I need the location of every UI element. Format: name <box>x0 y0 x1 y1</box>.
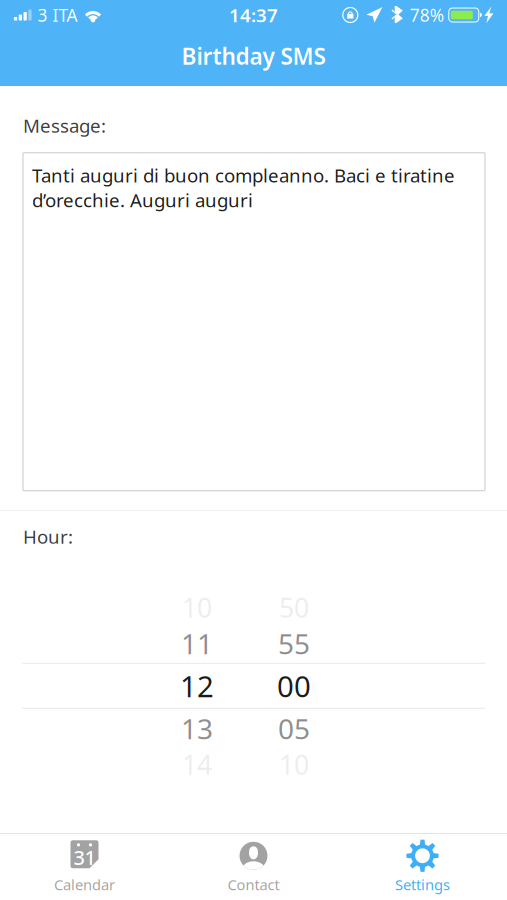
staticText: 00 <box>277 666 311 705</box>
button[interactable]: Tanti auguri di buon compleanno. Baci e … <box>23 153 485 491</box>
staticText: 14 <box>182 747 212 782</box>
staticText: 13 <box>181 710 213 747</box>
button[interactable]: Settings <box>338 834 507 900</box>
staticText: Birthday SMS <box>181 41 325 71</box>
staticText: 14:37 <box>229 3 278 27</box>
staticText: 10 <box>182 590 212 625</box>
staticText: 78% <box>410 3 444 26</box>
button[interactable]: Minutes <box>245 591 342 781</box>
staticText: Calendar <box>54 875 115 894</box>
staticText: 31 <box>73 844 95 871</box>
staticText: Message: <box>23 113 106 138</box>
staticText: 55 <box>278 625 310 662</box>
button[interactable]: 31 <box>0 834 169 900</box>
staticText: 12 <box>180 666 214 705</box>
staticText: 50 <box>279 590 309 625</box>
staticText: Hour: <box>23 524 73 549</box>
staticText: Contact <box>227 875 279 894</box>
staticText: Tanti auguri di buon compleanno. Baci e … <box>32 163 455 212</box>
button[interactable]: Contact <box>169 834 338 900</box>
staticText: 10 <box>279 747 309 782</box>
staticText: 3 ITA <box>37 3 77 26</box>
button[interactable]: Hours <box>148 591 245 781</box>
staticText: 11 <box>181 625 213 662</box>
staticText: Settings <box>395 875 450 894</box>
staticText: 05 <box>278 710 310 747</box>
